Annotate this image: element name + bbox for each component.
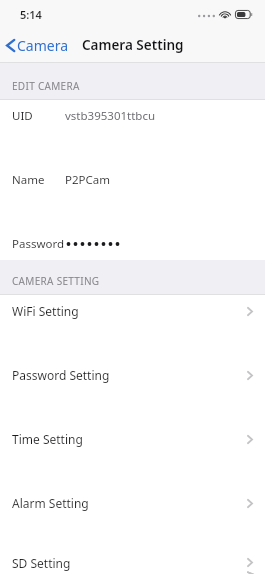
staticText: CAMERA SETTING [12,274,100,288]
staticText: Alarm Setting [12,495,247,511]
staticText: Time Setting [12,431,247,447]
staticText: WiFi Setting [12,303,247,319]
staticText: UID [12,108,33,124]
button[interactable]: Time Setting [0,423,265,455]
staticText: Password Setting [12,367,247,383]
staticText: P2PCam [65,172,110,188]
button[interactable]: Password [0,228,265,260]
button[interactable]: Password Setting [0,359,265,391]
staticText: 5:14 [20,7,42,22]
staticText: Camera [17,36,69,55]
button[interactable]: SD Setting [0,551,265,574]
staticText: EDIT CAMERA [12,79,80,93]
staticText: Password [12,236,65,252]
button[interactable]: Alarm Setting [0,487,265,519]
staticText: vstb395301ttbcu [65,108,156,124]
staticText: Camera Setting [82,36,184,54]
button[interactable]: WiFi Setting [0,295,265,327]
button[interactable]: UID [0,100,265,132]
button[interactable]: Name [0,164,265,196]
staticText: Name [12,172,45,188]
button[interactable]: Camera [0,32,77,59]
staticText: SD Setting [12,555,247,571]
